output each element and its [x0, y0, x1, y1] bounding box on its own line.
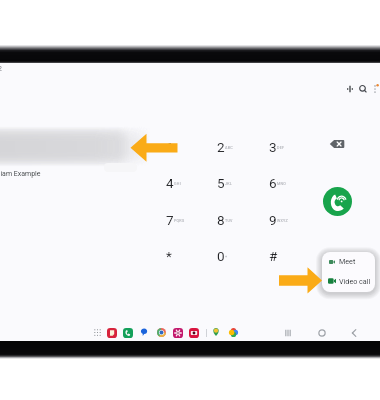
button[interactable]: Call	[323, 187, 352, 216]
button[interactable]: Home	[316, 327, 328, 339]
button[interactable]: Maps	[212, 328, 220, 336]
button[interactable]: 3	[249, 132, 297, 162]
staticText: TUV	[225, 219, 233, 223]
button[interactable]: Phone	[123, 328, 133, 338]
button[interactable]: Back	[348, 327, 360, 339]
button[interactable]	[322, 252, 375, 272]
button[interactable]: 0	[197, 241, 245, 271]
button[interactable]: 7	[146, 205, 194, 235]
staticText: 1	[166, 139, 174, 155]
staticText: 8	[217, 212, 225, 228]
staticText: +	[225, 255, 228, 259]
button[interactable]: More options	[367, 81, 380, 97]
staticText: JKL	[225, 182, 233, 186]
button[interactable]: All apps	[94, 329, 101, 336]
staticText: 2	[0, 65, 2, 73]
button[interactable]: Camera	[189, 328, 199, 338]
staticText: Video call	[339, 277, 371, 285]
button[interactable]	[322, 271, 375, 291]
staticText: #	[269, 248, 278, 264]
staticText: *	[166, 248, 172, 264]
button[interactable]: 6	[249, 168, 297, 198]
button[interactable]: #	[249, 241, 297, 271]
button[interactable]: 1	[146, 132, 194, 162]
button[interactable]: 8	[197, 205, 245, 235]
staticText: 2	[217, 139, 225, 155]
button[interactable]: 9	[249, 205, 297, 235]
staticText: 4	[166, 175, 174, 191]
button[interactable]: Messages	[140, 328, 148, 336]
button[interactable]: Recent apps	[282, 327, 294, 339]
staticText: ABC	[225, 146, 233, 150]
staticText: PQRS	[174, 219, 185, 223]
button[interactable]: 2	[197, 132, 245, 162]
button[interactable]: Chrome	[157, 328, 166, 337]
staticText: Meet	[339, 257, 356, 265]
staticText: lliam Example	[0, 170, 41, 178]
staticText: MNO	[277, 182, 287, 186]
button[interactable]: 4	[146, 168, 194, 198]
button[interactable]: 5	[197, 168, 245, 198]
button[interactable]: Add contact	[342, 81, 358, 97]
staticText: 9	[269, 212, 277, 228]
button[interactable]: *	[146, 241, 194, 271]
button[interactable]: Search	[355, 81, 371, 97]
staticText: 0	[217, 248, 225, 264]
staticText: DEF	[277, 146, 285, 150]
staticText: GHI	[174, 182, 181, 186]
staticText: 3	[269, 139, 277, 155]
staticText: 6	[269, 175, 277, 191]
button[interactable]: Photos	[229, 328, 238, 337]
button[interactable]: Backspace	[327, 134, 347, 154]
button[interactable]: Files	[173, 328, 183, 338]
staticText: WXYZ	[277, 219, 289, 223]
button[interactable]: Keep	[107, 328, 117, 338]
staticText: 5	[217, 175, 225, 191]
staticText: 7	[166, 212, 174, 228]
